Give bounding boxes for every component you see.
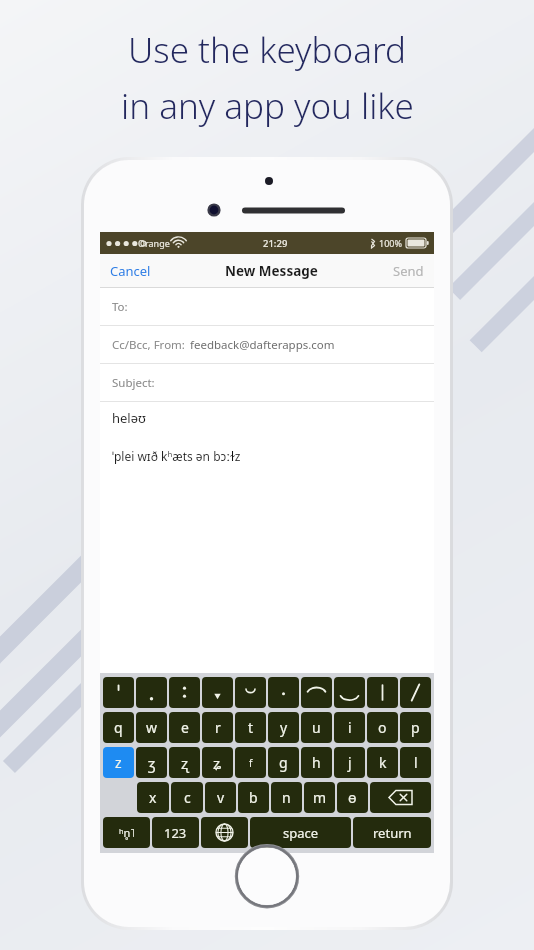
staticText: t — [248, 718, 254, 737]
button[interactable]: x — [137, 782, 169, 813]
staticText: in any app you like — [121, 82, 414, 130]
staticText: r — [215, 718, 221, 737]
staticText: k — [379, 753, 387, 772]
button[interactable]: return — [353, 817, 431, 848]
staticText: New Message — [225, 262, 318, 280]
staticText: Use the keyboard — [128, 26, 406, 74]
button[interactable]: Change keyboard — [201, 817, 248, 848]
button[interactable]: t — [235, 712, 266, 743]
staticText: j — [348, 753, 352, 772]
staticText: Cancel — [110, 262, 151, 280]
button[interactable]: ʐ — [169, 747, 200, 778]
button[interactable]: r — [202, 712, 233, 743]
staticText: i — [348, 718, 352, 737]
staticText: z — [115, 753, 122, 772]
staticText: o — [378, 718, 387, 737]
staticText: u — [312, 718, 321, 737]
button[interactable]: ɵ — [337, 782, 368, 813]
button[interactable]: n — [271, 782, 302, 813]
button[interactable]: breve — [235, 677, 266, 708]
button[interactable]: tie bar above — [301, 677, 332, 708]
staticText: g — [279, 753, 288, 772]
button[interactable]: m — [304, 782, 335, 813]
staticText: v — [217, 788, 225, 807]
staticText: w — [146, 718, 158, 737]
button[interactable]: Cancel — [108, 257, 153, 285]
staticText: q — [114, 718, 123, 737]
button[interactable]: tie bar below — [334, 677, 365, 708]
button[interactable]: Backspace — [370, 782, 431, 813]
staticText: heləʊ — [112, 409, 146, 427]
button[interactable]: h — [301, 747, 332, 778]
staticText: c — [184, 788, 191, 807]
button[interactable]: apostrophe — [103, 677, 134, 708]
button[interactable]: l — [400, 747, 431, 778]
staticText: To: — [112, 299, 128, 315]
staticText: y — [280, 718, 288, 737]
staticText: ʰn̥˥ — [119, 825, 135, 840]
staticText: feedback@dafterapps.com — [190, 337, 335, 353]
button[interactable]: o — [367, 712, 398, 743]
button[interactable]: dot — [268, 677, 299, 708]
staticText: Orange — [138, 237, 170, 249]
staticText: f — [249, 756, 253, 770]
button[interactable]: j — [334, 747, 365, 778]
staticText: Subject: — [112, 375, 155, 391]
button[interactable]: length mark — [169, 677, 200, 708]
staticText: e — [181, 718, 189, 737]
staticText: p — [411, 718, 420, 737]
button[interactable]: heləʊ — [100, 402, 434, 673]
staticText: n — [282, 788, 291, 807]
button[interactable]: 123 — [152, 817, 199, 848]
staticText: return — [373, 824, 412, 842]
button[interactable]: To: — [100, 288, 434, 326]
button[interactable]: ʒ — [136, 747, 167, 778]
button[interactable]: q — [103, 712, 134, 743]
staticText: ˈplei wɪð kʰæts ən bɔːɫz — [112, 448, 241, 464]
button[interactable]: w — [136, 712, 167, 743]
staticText: 21:29 — [263, 237, 288, 250]
staticText: l — [414, 753, 418, 772]
button[interactable]: ʑ — [202, 747, 233, 778]
staticText: Cc/Bcc, From: — [112, 337, 185, 353]
button[interactable]: z — [103, 747, 134, 778]
staticText: ʐ — [181, 753, 189, 773]
button[interactable]: i — [334, 712, 365, 743]
button[interactable]: slash — [400, 677, 431, 708]
button[interactable]: Cc/Bcc, From: — [100, 326, 434, 364]
staticText: space — [283, 824, 319, 842]
button[interactable]: Send — [391, 257, 426, 285]
button[interactable]: dot below — [136, 677, 167, 708]
button[interactable]: vertical bar — [367, 677, 398, 708]
button[interactable]: v — [205, 782, 236, 813]
staticText: 123 — [164, 824, 187, 842]
button[interactable]: p — [400, 712, 431, 743]
button[interactable]: k — [367, 747, 398, 778]
staticText: Send — [393, 262, 424, 280]
button[interactable]: Phonetic modifiers — [103, 817, 150, 848]
staticText: ʑ — [213, 753, 222, 773]
button[interactable]: Subject: — [100, 364, 434, 402]
button[interactable]: e — [169, 712, 200, 743]
staticText: 100% — [379, 237, 402, 249]
staticText: m — [313, 788, 327, 807]
button[interactable]: triangle mark — [202, 677, 233, 708]
button[interactable]: b — [238, 782, 269, 813]
staticText: ɵ — [348, 788, 357, 807]
button[interactable]: space — [250, 817, 351, 848]
button[interactable]: c — [171, 782, 203, 813]
staticText: ʒ — [148, 753, 156, 773]
staticText: h — [312, 753, 321, 772]
button[interactable]: y — [268, 712, 299, 743]
button[interactable]: g — [268, 747, 299, 778]
staticText: b — [249, 788, 258, 807]
button[interactable]: f — [235, 747, 266, 778]
staticText: x — [149, 788, 157, 807]
button[interactable]: u — [301, 712, 332, 743]
